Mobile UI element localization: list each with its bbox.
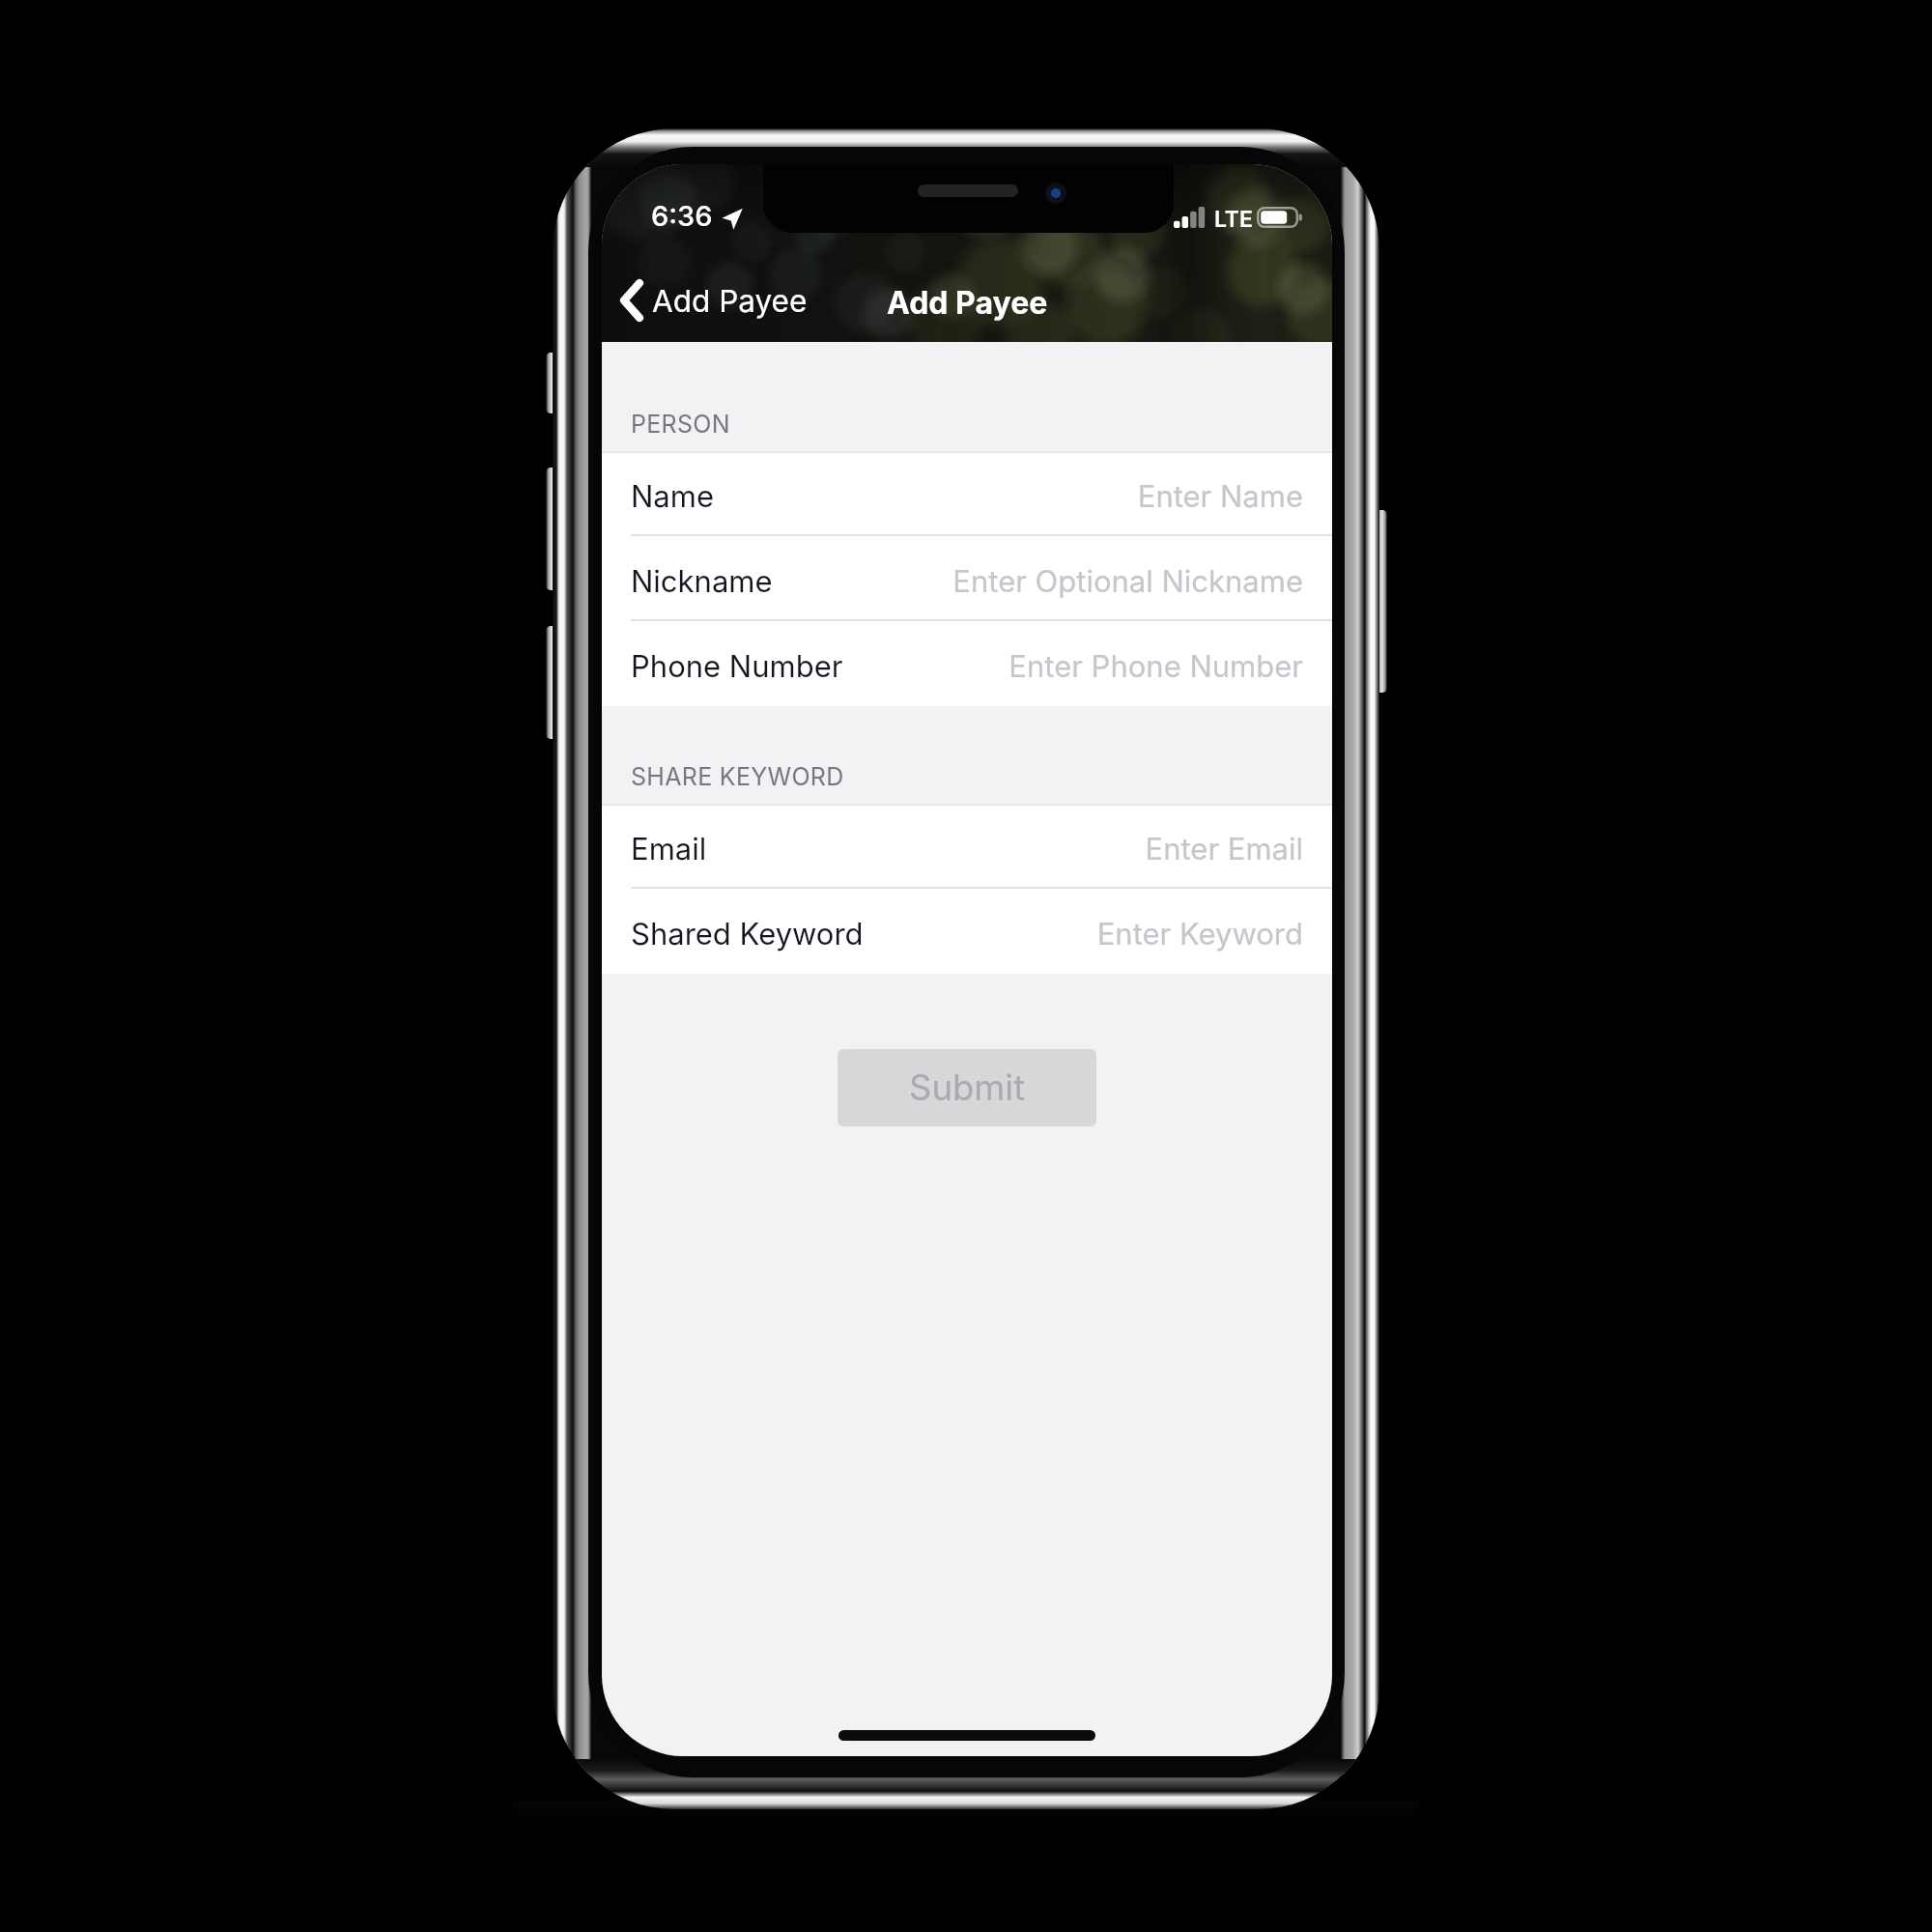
staticText: Add Payee [652,282,808,319]
staticText: Email [631,831,707,867]
button[interactable]: Nickname [602,536,1332,621]
staticText: Enter Phone Number [849,648,1303,685]
staticText: Enter Keyword [869,916,1303,952]
staticText: Enter Email [713,831,1303,867]
staticText: Add Payee [887,284,1048,322]
staticText: PERSON [631,410,730,439]
button[interactable]: Shared Keyword [602,889,1332,974]
staticText: Phone Number [631,648,843,685]
staticText: Submit [909,1066,1026,1109]
button[interactable]: Submit [838,1049,1096,1126]
button[interactable]: Phone Number [602,621,1332,706]
staticText: Enter Optional Nickname [779,563,1303,600]
staticText: Nickname [631,563,773,600]
staticText: Shared Keyword [631,916,864,952]
staticText: 6:36 [651,199,713,233]
button[interactable]: Email [602,804,1332,889]
button[interactable]: Back [611,271,817,329]
button[interactable]: Name [602,451,1332,536]
staticText: SHARE KEYWORD [631,762,844,791]
staticText: Name [631,478,714,515]
other: Back [620,279,642,322]
staticText: Enter Name [720,478,1303,515]
staticText: LTE [1214,206,1253,233]
